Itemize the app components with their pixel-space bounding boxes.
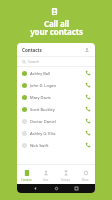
button[interactable]: John D. Logan: [17, 79, 95, 91]
staticText: Favs: [43, 178, 49, 182]
button[interactable]: Groups: [55, 165, 75, 184]
button[interactable]: Search: [17, 57, 95, 66]
staticText: Scott Buckley: [30, 107, 55, 112]
button[interactable]: Call Ashley G. Ellis: [85, 130, 91, 136]
button[interactable]: Call Scott Buckley: [85, 106, 91, 112]
staticText: Doctor Daniel: [30, 119, 56, 124]
button[interactable]: Ashley G. Ellis: [17, 127, 95, 139]
button[interactable]: Call Doctor Daniel: [85, 118, 91, 124]
staticText: Groups: [61, 178, 70, 182]
button[interactable]: Contacts: [17, 165, 36, 184]
staticText: Call all your contacts: [30, 18, 83, 37]
button[interactable]: Nick Swift: [17, 139, 95, 151]
button[interactable]: Account: [84, 47, 90, 53]
staticText: John D. Logan: [30, 83, 57, 88]
button[interactable]: Contacts app: [51, 8, 58, 15]
staticText: Contacts: [22, 47, 42, 53]
button[interactable]: Ashley Ball: [17, 67, 95, 79]
button[interactable]: Call Mary Davis: [85, 94, 91, 100]
staticText: Contacts: [21, 178, 32, 182]
button[interactable]: Scott Buckley: [17, 103, 95, 115]
button[interactable]: Doctor Daniel: [17, 115, 95, 127]
button[interactable]: Favourites: [36, 165, 55, 184]
button[interactable]: Call Nick Swift: [85, 142, 91, 148]
button[interactable]: Call John D. Logan: [85, 82, 91, 88]
staticText: Search: [28, 59, 40, 64]
staticText: More: [82, 178, 89, 182]
staticText: Nick Swift: [30, 143, 49, 148]
button[interactable]: Mary Davis: [17, 91, 95, 103]
staticText: Ashley G. Ellis: [30, 131, 56, 136]
button[interactable]: Settings: [75, 165, 95, 184]
staticText: Ashley Ball: [30, 71, 51, 76]
button[interactable]: Call Ashley Ball: [85, 70, 91, 76]
staticText: Mary Davis: [30, 95, 51, 100]
